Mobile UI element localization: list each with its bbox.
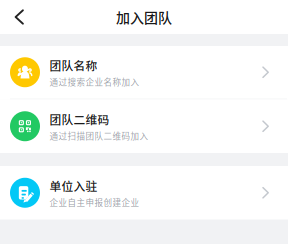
staticText: 通过搜索企业名称加入 — [49, 76, 139, 88]
staticText: 加入团队 — [116, 7, 172, 27]
button[interactable]: 团队名称 — [0, 46, 288, 99]
button[interactable]: Back — [0, 0, 37, 34]
staticText: 团队二维码 — [49, 111, 109, 128]
button[interactable]: 单位入驻 — [0, 166, 288, 219]
staticText: 团队名称 — [49, 57, 97, 74]
staticText: 企业自主申报创建企业 — [49, 196, 139, 208]
button[interactable]: 团队二维码 — [0, 99, 288, 153]
staticText: 单位入驻 — [49, 177, 97, 194]
staticText: 通过扫描团队二维码加入 — [49, 130, 148, 142]
